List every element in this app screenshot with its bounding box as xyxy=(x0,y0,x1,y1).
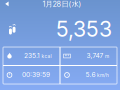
button[interactable]: Average speed xyxy=(60,66,117,84)
staticText: 5.6 xyxy=(85,70,95,79)
button[interactable]: Active time xyxy=(3,66,59,84)
staticText: 235.1 xyxy=(24,51,40,60)
staticText: m xyxy=(105,53,109,59)
button[interactable]: Calories burned xyxy=(3,47,59,65)
staticText: 1月28日(水) xyxy=(42,0,81,9)
staticText: 00:39:59 xyxy=(22,70,50,79)
staticText: km/h xyxy=(97,72,109,78)
button[interactable]: Distance xyxy=(60,47,117,65)
staticText: 5,353 xyxy=(56,16,112,42)
button[interactable]: Back xyxy=(0,0,14,11)
staticText: kcal xyxy=(41,53,51,59)
staticText: 3,747 xyxy=(86,51,103,60)
